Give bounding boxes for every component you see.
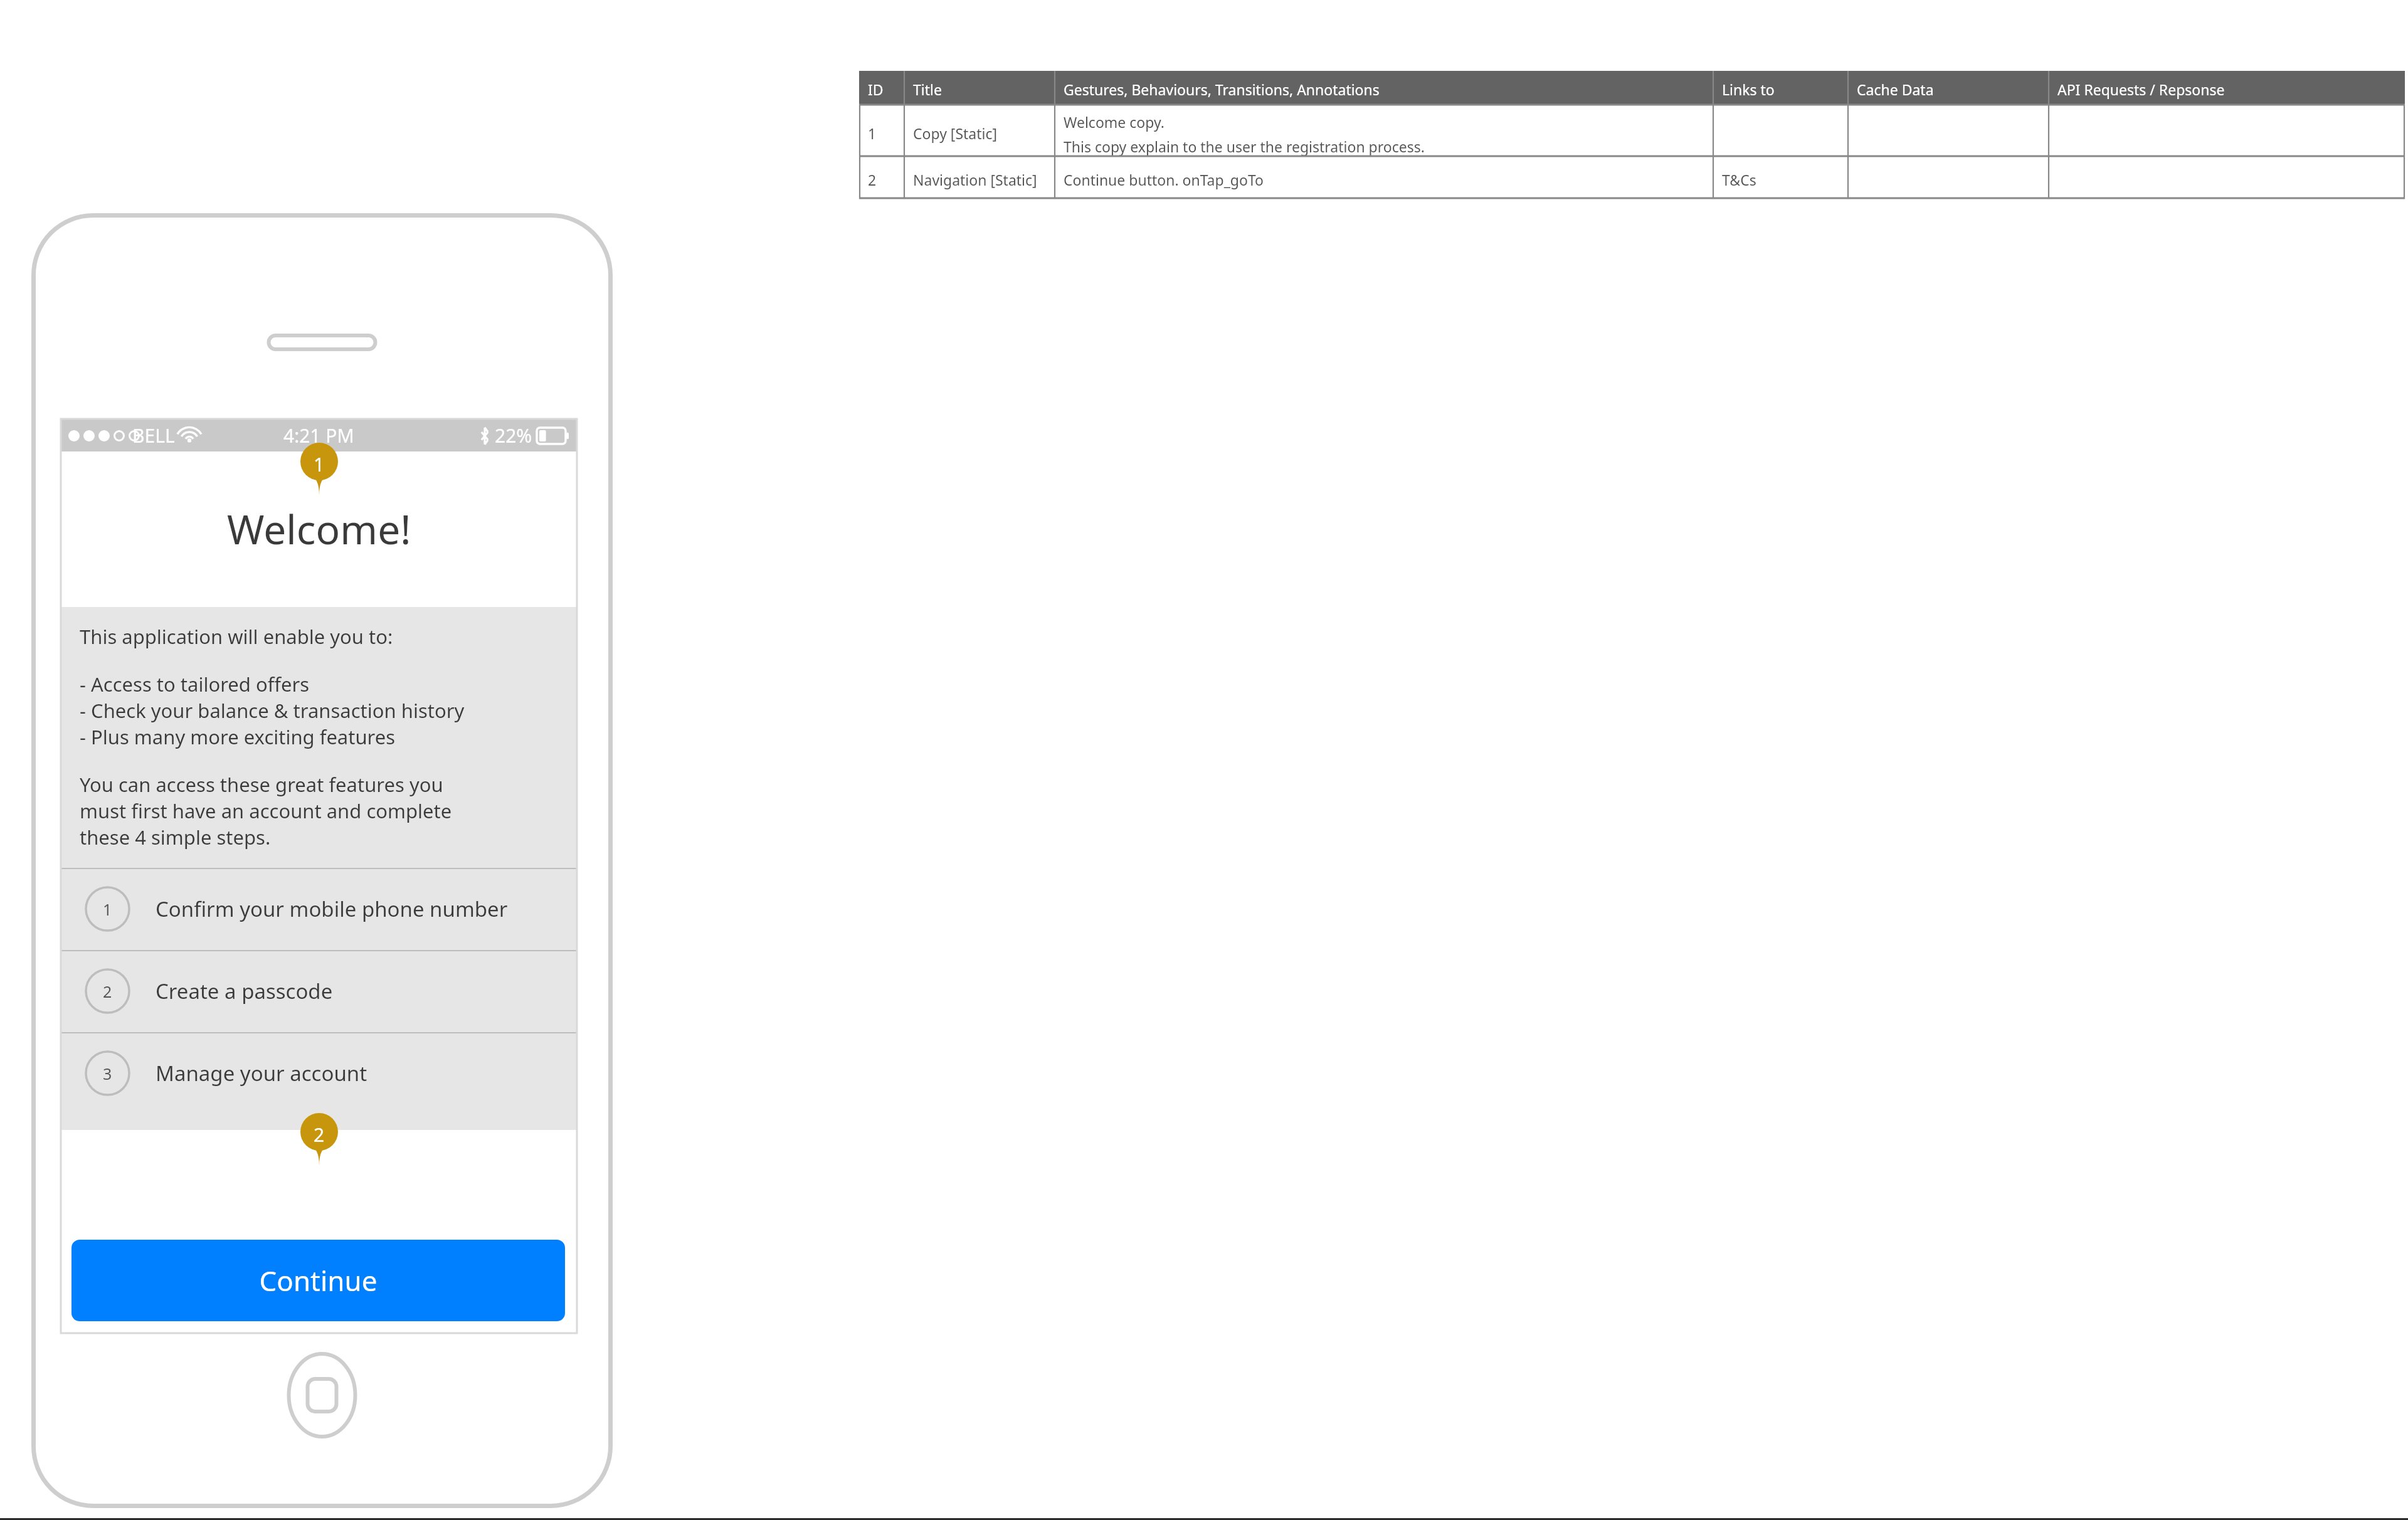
staticText: Confirm your mobile phone number xyxy=(156,895,508,923)
staticText: 2 xyxy=(868,170,877,189)
staticText: 1 xyxy=(868,124,877,143)
staticText: Copy [Static] xyxy=(913,124,998,143)
staticText: This application will enable you to: xyxy=(80,623,393,650)
staticText: 3 xyxy=(103,1063,112,1084)
staticText: Create a passcode xyxy=(156,977,333,1005)
staticText: Navigation [Static] xyxy=(913,170,1037,189)
staticText: T&Cs xyxy=(1722,170,1756,189)
staticText: 4:21 PM xyxy=(283,423,354,448)
staticText: - Check your balance & transaction histo… xyxy=(80,697,465,724)
staticText: these 4 simple steps. xyxy=(80,824,271,850)
staticText: Gestures, Behaviours, Transitions, Annot… xyxy=(1064,80,1380,99)
button[interactable]: 1 xyxy=(61,868,577,950)
staticText: must first have an account and complete xyxy=(80,798,452,824)
staticText: BELL xyxy=(132,423,175,448)
staticText: Welcome copy. xyxy=(1064,112,1164,132)
staticText: Cache Data xyxy=(1857,80,1934,99)
button[interactable]: Continue xyxy=(71,1240,565,1321)
staticText: Welcome! xyxy=(227,502,411,556)
staticText: Manage your account xyxy=(156,1059,367,1087)
staticText: You can access these great features you xyxy=(80,771,443,798)
staticText: 22% xyxy=(495,423,532,448)
staticText: Links to xyxy=(1722,80,1775,99)
staticText: 1 xyxy=(314,451,325,477)
staticText: API Requests / Repsonse xyxy=(2057,80,2225,99)
staticText: 1 xyxy=(103,899,112,920)
button[interactable]: 2 xyxy=(61,950,577,1032)
staticText: Continue xyxy=(259,1262,378,1299)
button[interactable]: 3 xyxy=(61,1032,577,1114)
staticText: Continue button. onTap_goTo xyxy=(1064,170,1264,189)
staticText: - Access to tailored offers xyxy=(80,671,310,697)
staticText: ID xyxy=(868,80,884,99)
staticText: Title xyxy=(913,80,942,99)
staticText: 2 xyxy=(314,1122,325,1148)
staticText: - Plus many more exciting features xyxy=(80,724,396,750)
staticText: This copy explain to the user the regist… xyxy=(1064,137,1425,156)
staticText: 2 xyxy=(103,981,112,1002)
